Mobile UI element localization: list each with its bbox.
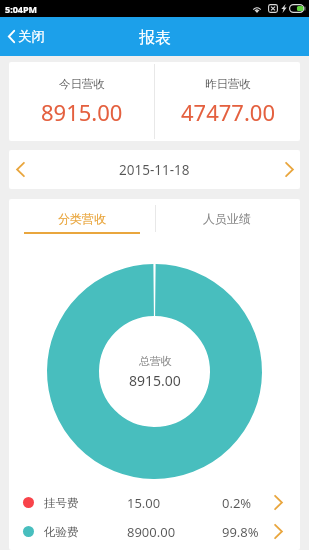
staticText: 8915.00 [41,97,123,127]
staticText: 8900.00 [127,523,176,541]
button[interactable]: 人员业绩 [154,199,300,234]
button[interactable]: Previous day [9,150,31,189]
staticText: 8915.00 [129,371,181,390]
staticText: 化验费 [44,525,79,539]
staticText: 0.2% [222,494,252,512]
staticText: 分类营收 [58,211,106,226]
staticText: 关闭 [18,28,45,45]
staticText: 5:04PM [5,3,38,15]
staticText: 99.8% [222,523,259,541]
staticText: 总营收 [139,354,172,368]
staticText: 47477.00 [181,97,275,127]
button[interactable]: 今日营收 [9,62,154,141]
staticText: 昨日营收 [205,77,251,91]
button[interactable]: 分类营收 [9,199,154,234]
staticText: 今日营收 [59,77,105,91]
staticText: 人员业绩 [203,211,251,226]
button[interactable]: Next day [278,150,300,189]
staticText: 15.00 [127,494,161,512]
button[interactable]: 挂号费 [9,488,300,517]
staticText: 2015-11-18 [119,161,190,179]
staticText: 挂号费 [44,496,79,510]
button[interactable]: 昨日营收 [155,62,300,141]
button[interactable]: 化验费 [9,517,300,546]
staticText: 报表 [139,28,171,48]
button[interactable]: 关闭 [0,17,55,56]
